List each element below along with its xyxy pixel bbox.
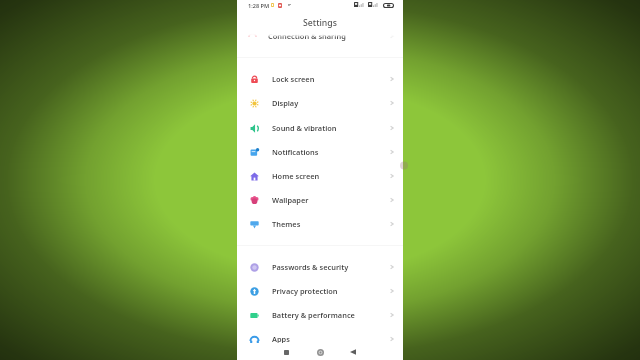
staticText: Connection & sharing: [268, 31, 346, 41]
button[interactable]: Home screen: [237, 164, 403, 188]
staticText: Settings: [237, 17, 403, 29]
button[interactable]: Recents: [278, 346, 294, 358]
button[interactable]: Connection & sharing: [237, 29, 403, 42]
staticText: Passwords & security: [272, 262, 349, 272]
staticText: Battery & performance: [272, 310, 355, 320]
staticText: 1:28 PM: [248, 2, 270, 10]
button[interactable]: Notifications: [237, 140, 403, 164]
staticText: Apps: [272, 334, 290, 344]
staticText: Display: [272, 98, 299, 108]
button[interactable]: Passwords & security: [237, 255, 403, 279]
staticText: Privacy protection: [272, 286, 338, 296]
button[interactable]: Privacy protection: [237, 279, 403, 303]
button[interactable]: Sound & vibration: [237, 116, 403, 140]
staticText: Wallpaper: [272, 195, 309, 205]
button[interactable]: Battery & performance: [237, 303, 403, 327]
button[interactable]: Back: [345, 346, 361, 358]
button[interactable]: Wallpaper: [237, 188, 403, 212]
staticText: Themes: [272, 219, 301, 229]
button[interactable]: Apps: [237, 327, 403, 351]
button[interactable]: Home: [312, 346, 328, 358]
button[interactable]: Lock screen: [237, 67, 403, 91]
staticText: Sound & vibration: [272, 123, 337, 133]
staticText: Home screen: [272, 171, 320, 181]
staticText: Lock screen: [272, 74, 315, 84]
button[interactable]: Themes: [237, 212, 403, 236]
button[interactable]: Display: [237, 91, 403, 115]
staticText: Notifications: [272, 147, 319, 157]
